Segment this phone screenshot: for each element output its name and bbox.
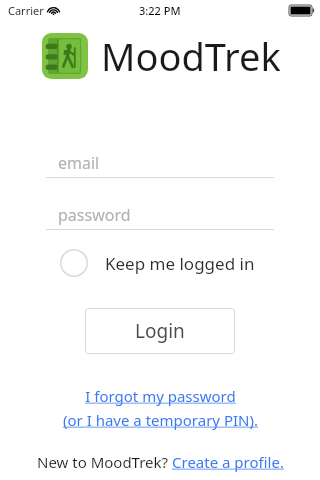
button[interactable]: Create a profile. [172,452,284,472]
staticText: Create a profile. [172,452,284,472]
button[interactable]: password [46,200,274,230]
staticText: Keep me logged in [105,252,255,275]
staticText: (or I have a temporary PIN). [63,410,258,430]
staticText: Login [135,318,185,344]
button[interactable]: Keep me logged in [60,249,320,277]
staticText: email [58,152,100,174]
button[interactable]: Login [85,308,235,354]
other: MoodTrek logo [42,33,88,79]
staticText: Carrier [8,3,44,18]
staticText: 3:22 PM [139,3,181,18]
staticText: MoodTrek [101,30,281,82]
button[interactable]: email [46,148,274,178]
button[interactable]: (or I have a temporary PIN). [63,410,258,430]
staticText: password [58,204,131,226]
staticText: New to MoodTrek? [37,452,172,472]
button[interactable]: I forgot my password [85,386,236,406]
staticText: I forgot my password [85,386,236,406]
